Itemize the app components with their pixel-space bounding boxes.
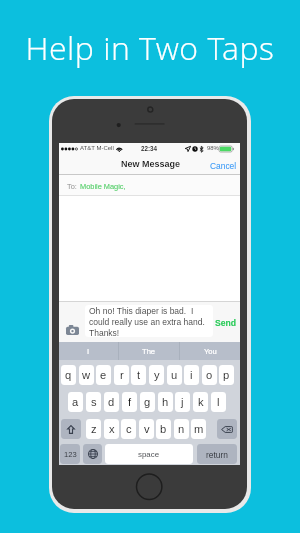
- staticText: Mobile Magic,: [80, 182, 126, 190]
- button[interactable]: z: [86, 419, 101, 439]
- staticText: 98%: [207, 145, 219, 152]
- staticText: f: [128, 396, 132, 409]
- staticText: s: [91, 396, 97, 409]
- staticText: g: [144, 396, 151, 409]
- staticText: 22:34: [141, 145, 158, 152]
- staticText: i: [190, 369, 193, 382]
- staticText: Oh no! This diaper is bad. I could reall…: [89, 306, 205, 337]
- button[interactable]: b: [156, 419, 171, 439]
- staticText: Cancel: [210, 161, 237, 170]
- button[interactable]: u: [167, 365, 182, 385]
- button[interactable]: Cancel: [207, 157, 240, 174]
- button[interactable]: I: [59, 342, 118, 360]
- button[interactable]: i: [184, 365, 199, 385]
- button[interactable]: j: [175, 392, 190, 412]
- button[interactable]: d: [104, 392, 119, 412]
- button[interactable]: p: [219, 365, 234, 385]
- button[interactable]: e: [96, 365, 111, 385]
- staticText: space: [138, 450, 160, 459]
- staticText: c: [126, 423, 132, 436]
- button[interactable]: x: [104, 419, 119, 439]
- staticText: The: [142, 347, 156, 355]
- staticText: e: [100, 369, 107, 382]
- staticText: k: [198, 396, 204, 409]
- button[interactable]: v: [139, 419, 154, 439]
- button[interactable]: a: [68, 392, 83, 412]
- button[interactable]: w: [79, 365, 94, 385]
- staticText: y: [154, 369, 160, 382]
- button[interactable]: o: [202, 365, 217, 385]
- staticText: New Message: [121, 159, 181, 169]
- button[interactable]: s: [86, 392, 101, 412]
- button[interactable]: Switch keyboard: [83, 444, 102, 464]
- staticText: 123: [64, 450, 77, 458]
- staticText: j: [181, 396, 184, 409]
- staticText: u: [171, 369, 178, 382]
- button[interactable]: c: [121, 419, 136, 439]
- staticText: n: [178, 423, 185, 436]
- staticText: I: [87, 347, 90, 355]
- button[interactable]: y: [149, 365, 164, 385]
- staticText: x: [109, 423, 115, 436]
- staticText: h: [162, 396, 169, 409]
- button[interactable]: 123: [60, 444, 80, 464]
- staticText: z: [91, 423, 97, 436]
- button[interactable]: r: [114, 365, 129, 385]
- button[interactable]: Send: [212, 312, 240, 334]
- button[interactable]: g: [140, 392, 155, 412]
- button[interactable]: You: [180, 342, 240, 360]
- staticText: You: [204, 347, 217, 355]
- staticText: l: [217, 396, 220, 409]
- staticText: q: [65, 369, 72, 382]
- button[interactable]: To:: [59, 175, 240, 196]
- button[interactable]: l: [211, 392, 226, 412]
- staticText: p: [223, 369, 230, 382]
- staticText: return: [206, 450, 228, 459]
- button[interactable]: Backspace: [217, 419, 237, 439]
- staticText: v: [144, 423, 150, 436]
- button[interactable]: q: [61, 365, 76, 385]
- staticText: Help in Two Taps: [25, 26, 275, 70]
- staticText: Send: [215, 318, 237, 328]
- button[interactable]: Oh no! This diaper is bad. I could reall…: [85, 305, 213, 337]
- button[interactable]: m: [191, 419, 206, 439]
- staticText: w: [82, 369, 91, 382]
- button[interactable]: Take photo: [66, 324, 79, 336]
- staticText: m: [194, 423, 204, 436]
- button[interactable]: f: [122, 392, 137, 412]
- button[interactable]: space: [105, 444, 193, 464]
- staticText: a: [72, 396, 79, 409]
- button[interactable]: h: [158, 392, 173, 412]
- button[interactable]: Shift: [61, 419, 81, 439]
- staticText: o: [206, 369, 213, 382]
- staticText: d: [108, 396, 115, 409]
- staticText: AT&T M-Cell: [80, 145, 114, 152]
- button[interactable]: t: [131, 365, 146, 385]
- button[interactable]: n: [174, 419, 189, 439]
- staticText: r: [120, 369, 124, 382]
- staticText: b: [160, 423, 167, 436]
- button[interactable]: The: [119, 342, 179, 360]
- button[interactable]: k: [193, 392, 208, 412]
- button[interactable]: return: [197, 444, 237, 464]
- staticText: t: [137, 369, 141, 382]
- staticText: To:: [67, 182, 77, 190]
